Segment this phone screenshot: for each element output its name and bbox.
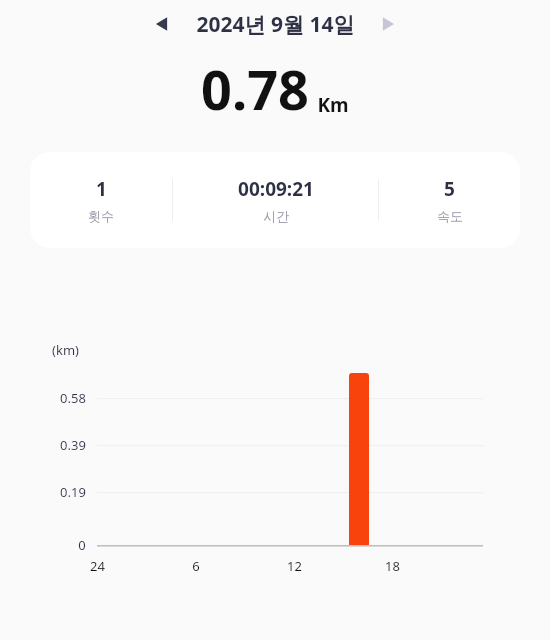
staticText: 24	[90, 557, 105, 575]
staticText: 0.19	[60, 483, 86, 501]
staticText: 시간	[263, 208, 289, 224]
staticText: 속도	[437, 208, 463, 224]
staticText: 0	[78, 536, 86, 554]
staticText: 18	[385, 557, 400, 575]
staticText: 5	[444, 176, 455, 202]
button[interactable]: 1	[30, 152, 172, 248]
staticText: 6	[192, 557, 200, 575]
staticText: 1	[96, 176, 107, 202]
staticText: Km	[317, 92, 349, 118]
staticText: 0.78	[201, 52, 309, 126]
staticText: 횟수	[88, 208, 114, 224]
button[interactable]: Next day	[372, 8, 404, 40]
button[interactable]: Previous day	[146, 8, 178, 40]
staticText: 2024년 9월 14일	[196, 10, 355, 39]
button[interactable]: 00:09:21	[173, 152, 378, 248]
staticText: 00:09:21	[238, 176, 314, 202]
button[interactable]: 5	[379, 152, 520, 248]
staticText: 12	[287, 557, 302, 575]
staticText: 0.58	[60, 389, 86, 407]
staticText: (km)	[52, 341, 79, 359]
staticText: 0.39	[60, 436, 86, 454]
